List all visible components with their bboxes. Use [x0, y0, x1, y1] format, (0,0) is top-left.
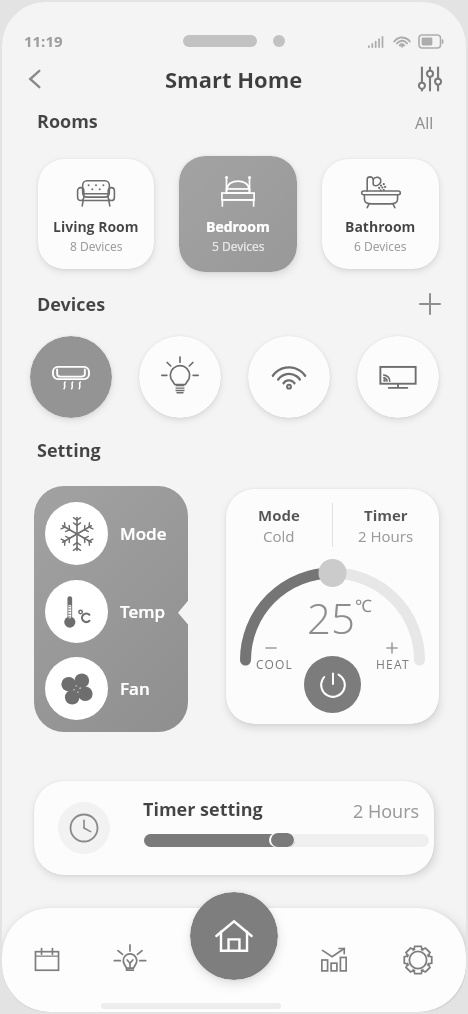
staticText: Setting	[37, 438, 101, 463]
staticText: 11:19	[24, 31, 63, 51]
staticText: 8 Devices	[70, 238, 123, 254]
staticText: Smart Home	[165, 64, 303, 94]
staticText: Mode	[120, 522, 167, 545]
staticText: 6 Devices	[354, 238, 407, 254]
staticText: All	[415, 112, 434, 130]
staticText: Living Room	[53, 217, 139, 236]
button[interactable]: Calendar	[20, 933, 74, 987]
button[interactable]: Lights	[103, 933, 157, 987]
button[interactable]: Bedroom	[179, 156, 297, 272]
staticText: Cold	[263, 526, 295, 546]
staticText: 5 Devices	[212, 238, 265, 254]
button[interactable]: Statistics	[307, 933, 361, 987]
button[interactable]: Living Room	[38, 159, 154, 269]
staticText: 2 Hours	[353, 799, 420, 824]
staticText: 2 Hours	[358, 526, 414, 546]
staticText: Fan	[120, 677, 150, 700]
button[interactable]: Back	[14, 58, 56, 100]
button[interactable]: All	[409, 106, 440, 136]
button[interactable]: Bathroom	[322, 159, 439, 269]
staticText: COOL	[256, 656, 294, 672]
button[interactable]: Mode	[226, 489, 439, 724]
staticText: HEAT	[376, 656, 410, 672]
staticText: Bathroom	[345, 217, 416, 236]
button[interactable]: Timer setting	[34, 781, 434, 875]
button[interactable]: Add device	[414, 289, 446, 319]
button[interactable]: Wi-Fi	[248, 336, 330, 418]
button[interactable]: Power	[304, 656, 361, 713]
staticText: Rooms	[37, 109, 98, 134]
staticText: Devices	[37, 292, 106, 317]
button[interactable]: Settings	[391, 933, 445, 987]
staticText: Timer	[364, 505, 408, 525]
button[interactable]: TV	[357, 336, 439, 418]
button[interactable]: Air conditioner	[30, 336, 112, 418]
staticText: Bedroom	[206, 217, 270, 236]
staticText: ℃	[355, 594, 372, 617]
button[interactable]: Temp	[34, 577, 188, 645]
button[interactable]: Mode	[34, 499, 188, 567]
staticText: 25	[307, 589, 355, 646]
button[interactable]: Fan	[34, 654, 188, 722]
staticText: Timer setting	[143, 797, 263, 822]
button[interactable]: Home	[190, 892, 278, 980]
staticText: Temp	[120, 600, 166, 623]
button[interactable]: Filter settings	[412, 61, 448, 97]
staticText: Mode	[258, 505, 300, 525]
button[interactable]: Light	[139, 336, 221, 418]
